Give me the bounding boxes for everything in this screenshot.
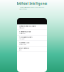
staticText: 10 min ago bbox=[18, 33, 25, 34]
staticText: Summarize this document bbox=[18, 25, 35, 27]
staticText: 1 hr ago bbox=[18, 38, 24, 40]
staticText: Yesterday bbox=[18, 43, 26, 45]
staticText: Mon bbox=[18, 49, 21, 51]
staticText: Translate to Spanish bbox=[18, 36, 32, 38]
staticText: 2 min ago bbox=[18, 27, 24, 29]
staticText: Draft a follow-up email bbox=[18, 31, 30, 33]
staticText: Powerful tools to supercharge your workf… bbox=[19, 6, 44, 10]
staticText: Artificial Intelligence bbox=[16, 2, 47, 5]
staticText: Generate ideas bbox=[18, 47, 29, 49]
staticText: Explain this code bbox=[18, 42, 29, 44]
